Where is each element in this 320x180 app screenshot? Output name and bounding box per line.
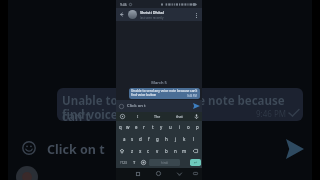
staticText: s xyxy=(131,136,134,142)
staticText: u xyxy=(169,124,172,130)
staticText: find voice button xyxy=(62,107,160,121)
staticText: z xyxy=(131,148,134,154)
staticText: e xyxy=(135,124,138,130)
button[interactable]: s xyxy=(128,133,136,145)
button[interactable]: v xyxy=(153,145,162,157)
staticText: h xyxy=(165,136,168,142)
button[interactable]: Home xyxy=(156,171,161,176)
staticText: i xyxy=(179,124,181,130)
button[interactable]: p xyxy=(193,121,202,133)
button[interactable]: l xyxy=(189,133,198,145)
button[interactable]: u xyxy=(166,121,175,133)
button[interactable]: r xyxy=(140,121,148,133)
staticText: g xyxy=(156,136,159,142)
staticText: hindi xyxy=(161,161,169,165)
button[interactable]: x xyxy=(136,145,144,157)
staticText: a xyxy=(123,136,126,142)
staticText: m xyxy=(182,148,187,154)
button[interactable]: h xyxy=(162,133,171,145)
staticText: j xyxy=(175,136,177,142)
button[interactable]: Translate xyxy=(132,160,137,165)
button[interactable]: k xyxy=(180,133,189,145)
staticText: ↵ xyxy=(194,160,198,165)
button[interactable]: Enter xyxy=(190,159,201,166)
button[interactable]: q xyxy=(116,121,124,133)
staticText: f xyxy=(148,136,150,142)
staticText: c xyxy=(147,148,150,154)
button[interactable]: i xyxy=(175,121,184,133)
button[interactable]: m xyxy=(180,145,189,157)
button[interactable]: w xyxy=(124,121,132,133)
button[interactable]: Emoji xyxy=(119,104,124,109)
staticText: n xyxy=(174,148,177,154)
button[interactable]: t xyxy=(148,121,157,133)
button[interactable]: Recents xyxy=(136,172,140,176)
staticText: q xyxy=(119,124,122,130)
staticText: 9:46 PM xyxy=(187,94,197,98)
button[interactable]: Space xyxy=(149,159,180,166)
button[interactable]: Back xyxy=(177,172,182,176)
staticText: Shristi Dhital xyxy=(140,10,164,15)
staticText: ?123 xyxy=(120,161,127,165)
staticText: that xyxy=(176,114,183,119)
staticText: 9:46 PM xyxy=(256,108,287,119)
button[interactable]: Back xyxy=(118,11,125,18)
button[interactable]: ?123 xyxy=(119,161,128,165)
button[interactable]: j xyxy=(171,133,180,145)
button[interactable]: o xyxy=(184,121,193,133)
staticText: k xyxy=(183,136,186,142)
staticText: I xyxy=(137,114,139,119)
button[interactable]: f xyxy=(144,133,153,145)
staticText: x xyxy=(139,148,142,154)
staticText: March 5 xyxy=(116,80,202,85)
staticText: last seen recently xyxy=(140,16,164,20)
staticText: Unable to send any voice note because ca… xyxy=(62,93,303,121)
staticText: b xyxy=(165,148,168,154)
button[interactable]: Hide keyboard xyxy=(193,172,198,175)
button[interactable]: e xyxy=(132,121,140,133)
staticText: t xyxy=(152,124,154,130)
staticText: l xyxy=(193,136,195,142)
staticText: p xyxy=(196,124,199,130)
button[interactable]: Shift xyxy=(116,145,128,157)
staticText: 9:46 xyxy=(120,2,127,7)
button[interactable]: Send xyxy=(192,102,200,110)
staticText: r xyxy=(143,124,145,130)
staticText: o xyxy=(187,124,190,130)
button[interactable]: Backspace xyxy=(189,145,202,157)
staticText: d xyxy=(139,136,142,142)
staticText: T xyxy=(133,160,136,165)
button[interactable]: n xyxy=(171,145,180,157)
button[interactable]: y xyxy=(157,121,166,133)
button[interactable]: z xyxy=(128,145,136,157)
button[interactable]: Sticker xyxy=(141,160,146,165)
staticText: v xyxy=(156,148,159,154)
staticText: find voice button xyxy=(131,93,157,97)
button[interactable]: Keyboard settings xyxy=(120,114,125,119)
button[interactable]: More options xyxy=(193,12,199,18)
staticText: The xyxy=(154,114,161,119)
button[interactable]: b xyxy=(162,145,171,157)
staticText: Unable to send any voice note because ca… xyxy=(131,89,198,93)
button[interactable]: c xyxy=(144,145,153,157)
button[interactable]: d xyxy=(136,133,144,145)
staticText: y xyxy=(160,124,163,130)
button[interactable]: g xyxy=(153,133,162,145)
staticText: Click on t xyxy=(47,141,105,158)
button[interactable]: a xyxy=(120,133,128,145)
staticText: w xyxy=(126,124,130,130)
staticText: Click on t xyxy=(127,103,146,109)
